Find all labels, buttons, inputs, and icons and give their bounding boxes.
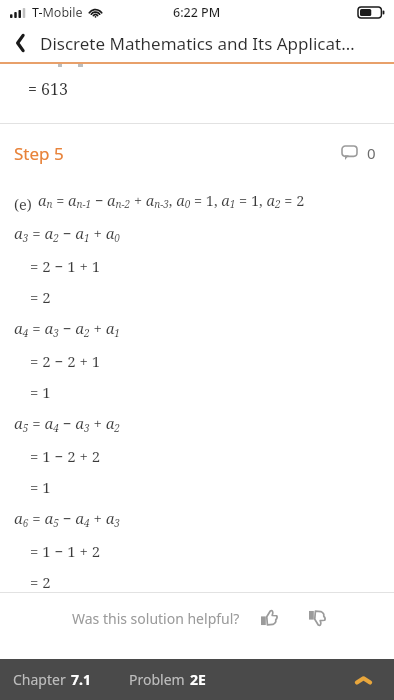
staticText: = 2 [30,572,51,592]
staticText: Chapter [13,670,66,689]
staticText: = 1 [30,477,51,497]
staticText: 2E [190,670,206,689]
staticText: (e) [14,194,32,214]
button[interactable]: Expand [346,663,380,697]
staticText: Discrete Mathematics and Its Applicat… [40,32,355,55]
staticText: Step 5 [14,142,64,165]
staticText: = 2 [30,287,51,307]
staticText: 0 [367,143,376,163]
button[interactable]: Not helpful [302,603,332,633]
staticText: a3 = a2 − a1 + a0 [14,223,120,245]
button[interactable]: Problem [129,670,206,689]
staticText: = 613 [28,78,68,100]
staticText: a6 = a5 − a4 + a3 [14,508,120,530]
staticText: 6:22 PM [173,4,221,21]
staticText: a5 = a4 − a3 + a2 [14,413,120,435]
staticText: = 2 − 1 + 1 [30,256,101,276]
staticText: = 1 − 1 + 2 [30,541,101,561]
staticText: Was this solution helpful? [72,609,240,628]
button[interactable]: Comments [338,139,380,167]
staticText: T-Mobile [32,4,83,21]
staticText: = 1 [30,382,51,402]
staticText: 7.1 [71,670,91,689]
button[interactable]: Step 5 [0,124,394,182]
button[interactable]: Back [0,24,40,62]
staticText: a4 = a3 − a2 + a1 [14,318,120,340]
staticText: an = an-1 − an-2 + an-3, a0 = 1, a1 = 1,… [38,190,305,211]
staticText: = 1 − 2 + 2 [30,446,101,466]
button[interactable]: Helpful [254,603,284,633]
button[interactable]: Chapter [13,670,91,689]
staticText: Problem [129,670,185,689]
staticText: = 2 − 2 + 1 [30,351,101,371]
